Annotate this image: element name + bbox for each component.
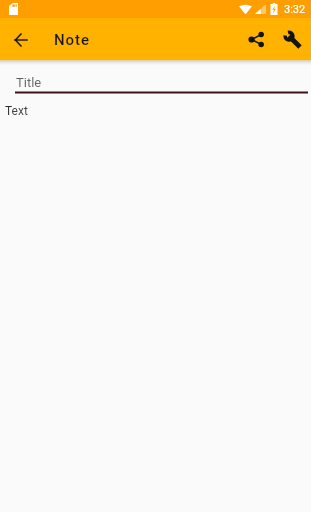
button[interactable]: Settings xyxy=(270,18,311,60)
staticText: 3:32 xyxy=(284,3,306,16)
staticText: Note xyxy=(54,31,90,49)
button[interactable]: Back xyxy=(0,18,42,60)
staticText: Text xyxy=(5,104,28,118)
button[interactable]: Share xyxy=(235,18,277,60)
staticText: Title xyxy=(16,75,42,90)
